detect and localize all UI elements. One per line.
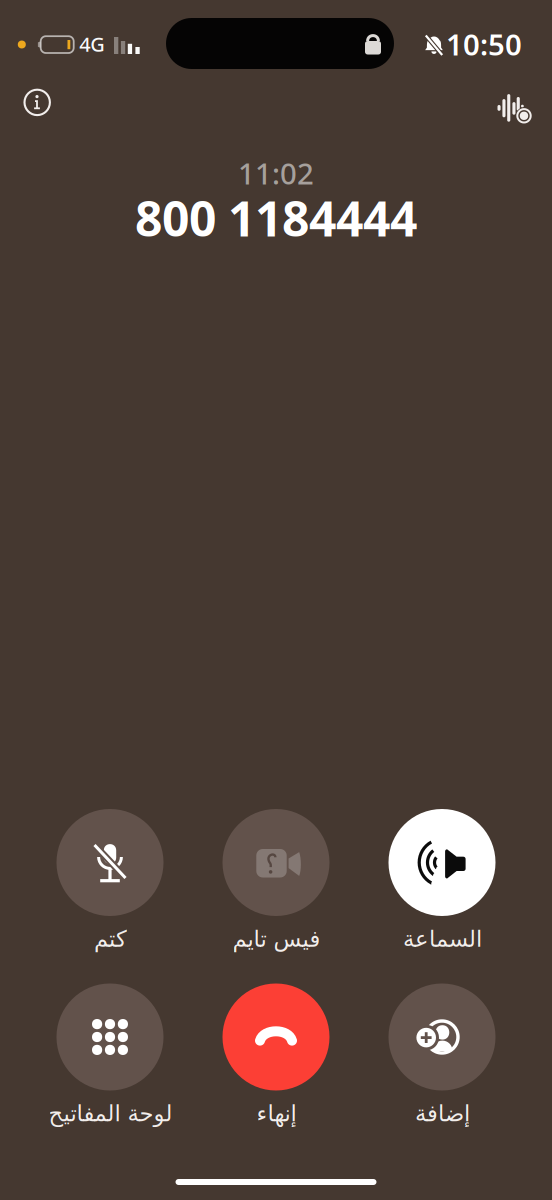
staticText: لوحة المفاتيح (48, 1101, 172, 1126)
button[interactable]: السماعة (359, 809, 525, 951)
staticText: إضافة (414, 1101, 469, 1126)
staticText: السماعة (402, 926, 481, 952)
staticText: 4G (79, 31, 105, 57)
staticText: 11:02 (238, 153, 314, 192)
button[interactable]: Call info (15, 80, 59, 124)
staticText: 800 1184444 (135, 186, 417, 250)
staticText: 10:50 (446, 24, 522, 63)
staticText: فيس تايم (232, 926, 320, 952)
button[interactable]: إنهاء (193, 983, 359, 1125)
button[interactable]: إضافة (359, 983, 525, 1125)
button[interactable]: لوحة المفاتيح (27, 983, 193, 1125)
button[interactable]: فيس تايم (193, 809, 359, 951)
staticText: كتم (93, 926, 126, 952)
button[interactable]: كتم (27, 809, 193, 951)
button[interactable]: Record call (490, 82, 534, 126)
staticText: إنهاء (256, 1101, 296, 1126)
